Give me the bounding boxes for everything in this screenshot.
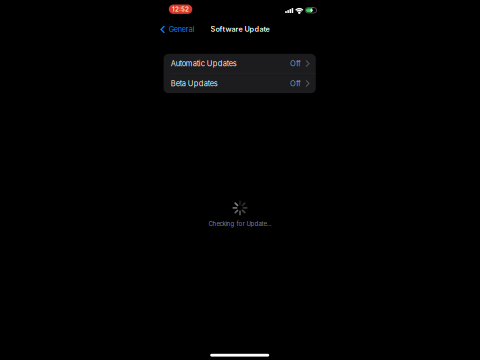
staticText: Automatic Updates [171,59,237,68]
staticText: Software Update [210,25,269,33]
button[interactable]: Automatic Updates [164,54,316,73]
staticText: 12:52 [172,5,189,13]
staticText: Off [290,59,301,68]
button[interactable]: Back to General [160,22,198,36]
staticText: Off [290,79,301,88]
staticText: Checking for Update… [208,220,271,227]
staticText: Beta Updates [171,79,218,88]
button[interactable]: Beta Updates [164,74,316,93]
staticText: General [169,25,195,34]
